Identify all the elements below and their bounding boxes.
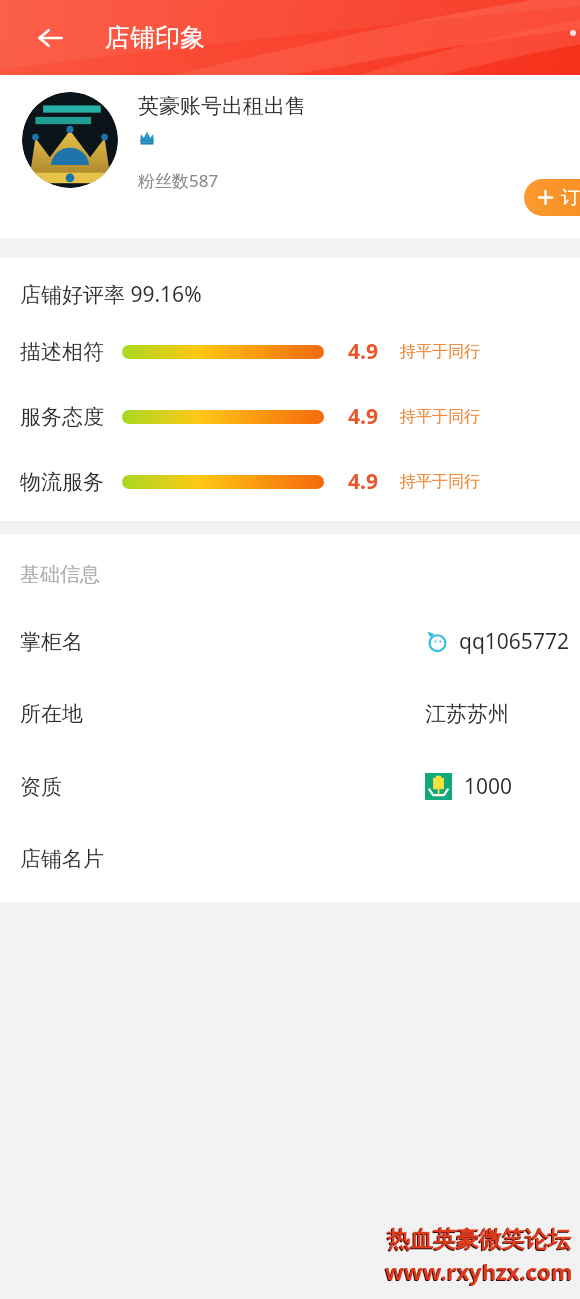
staticText: 基础信息 (20, 562, 100, 587)
staticText: 4.9 (348, 402, 378, 431)
staticText: 物流服务 (20, 469, 104, 495)
button[interactable]: 店铺名片 (0, 846, 580, 872)
staticText: 持平于同行 (400, 342, 480, 362)
staticText: 店铺印象 (105, 22, 205, 53)
staticText: 1000 (464, 772, 513, 801)
staticText: 订阅 (561, 186, 580, 210)
staticText: 资质 (20, 774, 62, 800)
staticText: 服务态度 (20, 404, 104, 430)
staticText: 热血英豪微笑论坛 (386, 1226, 570, 1255)
staticText: www.rxyhzx.com (384, 1257, 572, 1287)
staticText: 所在地 (20, 701, 83, 727)
staticText: 4.9 (348, 337, 378, 366)
staticText: 掌柜名 (20, 629, 83, 655)
staticText: 英豪账号出租出售 (138, 93, 306, 119)
staticText: 店铺好评率 99.16% (20, 280, 202, 309)
staticText: 持平于同行 (400, 407, 480, 427)
button[interactable]: 掌柜名 (0, 627, 580, 656)
staticText: qq1065772 (459, 627, 569, 656)
button[interactable]: Back (28, 16, 72, 60)
button[interactable]: 资质 (0, 772, 580, 801)
staticText: 持平于同行 (400, 472, 480, 492)
button[interactable]: 订阅 (524, 179, 580, 216)
staticText: www.rxyhzx.com (385, 1256, 573, 1286)
staticText: 4.9 (348, 467, 378, 496)
staticText: 热血英豪微笑论坛 (387, 1225, 571, 1254)
staticText: 店铺名片 (20, 846, 104, 872)
button[interactable]: 所在地 (0, 701, 580, 727)
staticText: 粉丝数587 (138, 169, 219, 192)
staticText: 描述相符 (20, 339, 104, 365)
staticText: 江苏苏州 (425, 701, 509, 727)
